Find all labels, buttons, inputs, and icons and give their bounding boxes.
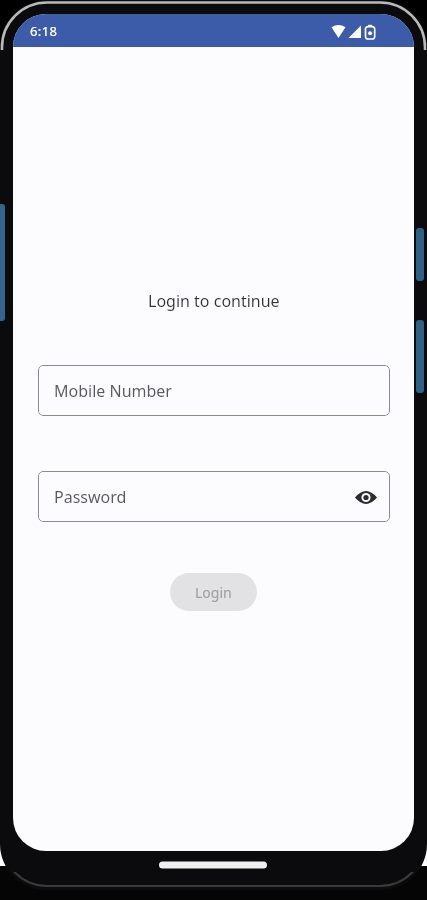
button[interactable]: Password (38, 471, 390, 522)
button[interactable] (351, 482, 381, 512)
staticText: 6:18 (30, 22, 58, 40)
staticText: Login (195, 583, 232, 602)
staticText: Mobile Number (54, 380, 172, 402)
button[interactable]: Mobile Number (38, 365, 390, 416)
button[interactable]: Login (170, 573, 257, 611)
staticText: Login to continue (148, 290, 280, 312)
staticText: Password (54, 486, 127, 508)
